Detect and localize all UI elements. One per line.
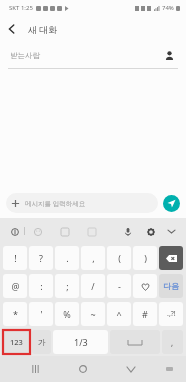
staticText: ) (144, 252, 147, 264)
button[interactable]: ( (107, 246, 131, 270)
staticText: ? (39, 252, 43, 264)
button[interactable]: / (81, 274, 105, 298)
staticText: - (118, 280, 121, 292)
staticText: 1/3 (74, 336, 88, 348)
staticText: .,?! (167, 309, 176, 319)
button[interactable]: Back (0, 17, 24, 41)
button[interactable]: Add contact (162, 48, 176, 62)
button[interactable]: , (81, 246, 105, 270)
staticText: 123 (10, 337, 23, 347)
staticText: # (142, 308, 148, 320)
button[interactable]: ? (29, 246, 53, 270)
button[interactable] (133, 274, 157, 298)
staticText: , (92, 252, 95, 264)
button[interactable]: 받는사람 (0, 42, 186, 68)
staticText: 메시지를 입력하세요 (25, 199, 86, 208)
staticText: : (40, 280, 43, 292)
button[interactable]: ' (29, 302, 53, 326)
button[interactable]: : (29, 274, 53, 298)
staticText: 다음 (163, 281, 179, 291)
button[interactable]: * (3, 302, 27, 326)
staticText: 74% (162, 4, 174, 12)
staticText: % (63, 308, 71, 320)
button[interactable]: .,?! (159, 302, 183, 326)
button[interactable]: ^ (107, 302, 131, 326)
button[interactable]: % (55, 302, 79, 326)
button[interactable]: Translate (8, 225, 21, 238)
staticText: @ (11, 280, 20, 292)
button[interactable]: ! (3, 246, 27, 270)
staticText: 새 대화 (28, 23, 58, 35)
button[interactable]: 다음 (159, 274, 183, 298)
staticText: , (171, 337, 174, 348)
button[interactable] (159, 246, 183, 270)
staticText: 받는사람 (10, 51, 40, 60)
button[interactable]: GIF (85, 225, 98, 238)
button[interactable]: , (162, 330, 183, 354)
staticText: . (66, 252, 69, 264)
button[interactable]: Keyboard toggle (162, 362, 176, 376)
button[interactable]: 123 (3, 330, 30, 354)
staticText: SKT 1:25 (9, 4, 33, 12)
button[interactable]: Back (122, 360, 140, 378)
staticText: ! (14, 252, 17, 264)
button[interactable]: Voice input (121, 225, 134, 238)
button[interactable]: . (55, 246, 79, 270)
button[interactable]: # (133, 302, 157, 326)
button[interactable]: Settings (144, 225, 157, 238)
button[interactable]: ~ (81, 302, 105, 326)
staticText: / (91, 280, 95, 292)
button[interactable]: Home (74, 360, 92, 378)
button[interactable]: 1/3 (53, 330, 108, 354)
staticText: 가 (38, 337, 46, 347)
button[interactable] (110, 330, 160, 354)
button[interactable]: @ (3, 274, 27, 298)
button[interactable]: Stickers (58, 225, 71, 238)
button[interactable]: Emoji (31, 225, 44, 238)
button[interactable]: 가 (32, 330, 51, 354)
button[interactable]: 메시지를 입력하세요 (6, 193, 158, 213)
button[interactable]: ) (133, 246, 157, 270)
staticText: ' (40, 308, 43, 320)
button[interactable]: Collapse keyboard (165, 225, 178, 238)
button[interactable]: Recents (26, 360, 44, 378)
button[interactable]: - (107, 274, 131, 298)
staticText: ^ (116, 308, 122, 320)
staticText: ( (118, 252, 121, 264)
button[interactable]: ; (55, 274, 79, 298)
staticText: ~ (90, 308, 96, 320)
button[interactable]: Send (163, 195, 180, 212)
staticText: * (13, 308, 18, 320)
staticText: ; (66, 280, 69, 292)
